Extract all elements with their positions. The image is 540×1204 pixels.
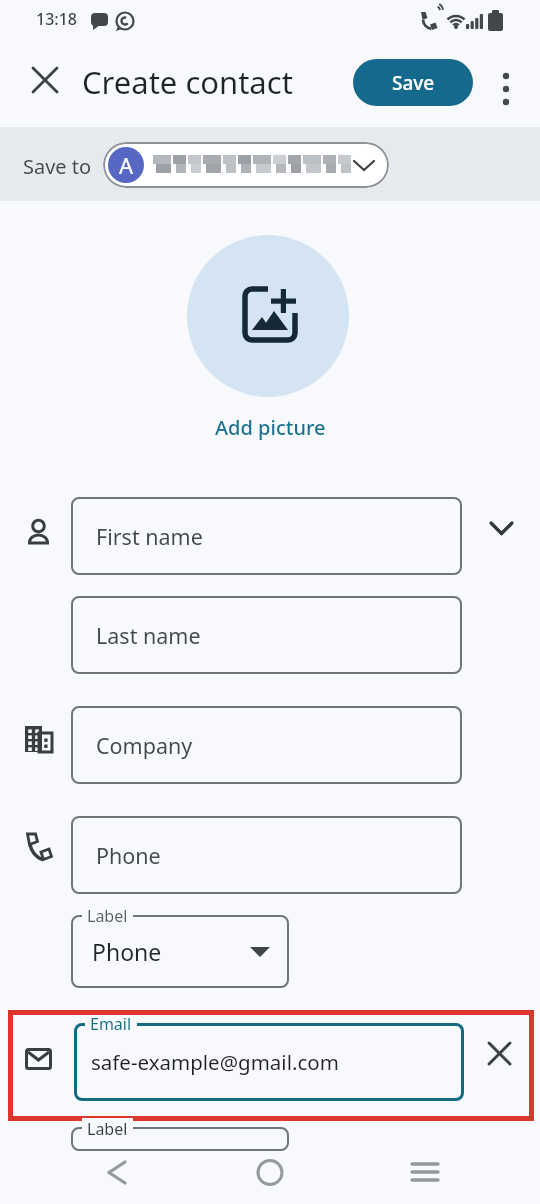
button[interactable]: [494, 64, 518, 108]
staticText: Create contact: [82, 61, 293, 103]
button[interactable]: [411, 1158, 439, 1186]
button[interactable]: Save: [353, 59, 473, 106]
button[interactable]: [256, 1158, 284, 1186]
button[interactable]: [32, 67, 58, 93]
button[interactable]: safe-example@gmail.com: [74, 1023, 464, 1101]
staticText: Email: [90, 1013, 132, 1035]
staticText: safe-example@gmail.com: [91, 1048, 339, 1076]
button[interactable]: Company: [71, 706, 462, 784]
staticText: Phone: [92, 936, 162, 967]
button[interactable]: A: [103, 142, 389, 188]
staticText: First name: [96, 522, 203, 551]
staticText: Company: [96, 731, 193, 760]
button[interactable]: [187, 235, 349, 397]
button[interactable]: Last name: [71, 596, 462, 674]
button[interactable]: [488, 518, 516, 538]
staticText: Last name: [96, 621, 201, 650]
button[interactable]: Phone: [71, 915, 289, 988]
staticText: Save to: [23, 153, 92, 177]
button[interactable]: First name: [71, 497, 462, 575]
staticText: Label: [87, 1118, 128, 1140]
staticText: A: [119, 150, 134, 180]
staticText: Label: [87, 905, 128, 927]
button[interactable]: Phone: [71, 816, 462, 894]
button[interactable]: Add picture: [190, 412, 350, 442]
staticText: Save: [392, 70, 435, 96]
staticText: Add picture: [215, 414, 326, 441]
button[interactable]: [104, 1158, 132, 1186]
staticText: 13:18: [36, 8, 77, 30]
button[interactable]: [487, 1041, 512, 1066]
staticText: Phone: [96, 841, 161, 870]
